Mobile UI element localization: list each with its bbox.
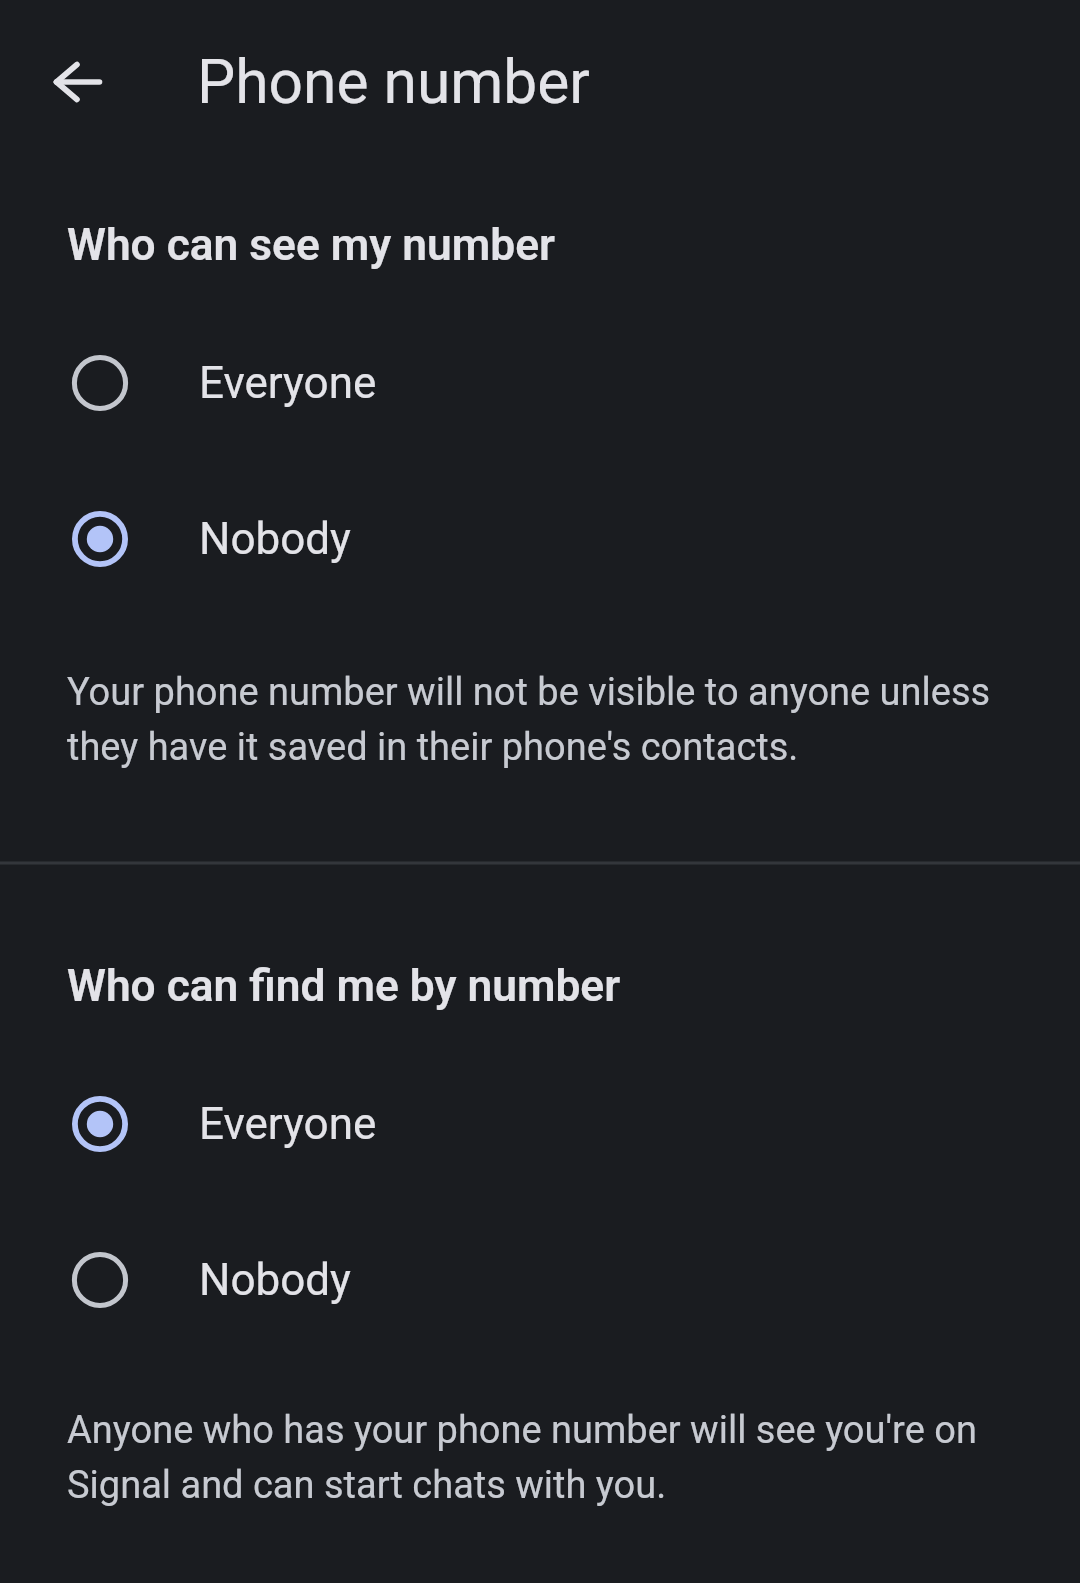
staticText: Everyone xyxy=(199,357,377,409)
staticText: Nobody xyxy=(199,1254,351,1306)
toggle[interactable]: Everyone xyxy=(0,305,1080,461)
staticText: Who can find me by number xyxy=(67,960,621,1012)
staticText: Nobody xyxy=(199,513,351,565)
staticText: Phone number xyxy=(197,47,590,118)
button[interactable]: Navigate up xyxy=(32,36,124,128)
staticText: Anyone who has your phone number will se… xyxy=(67,1399,1013,1509)
staticText: Everyone xyxy=(199,1098,377,1150)
toggle[interactable]: Everyone xyxy=(0,1046,1080,1202)
staticText: Your phone number will not be visible to… xyxy=(67,661,1013,771)
toggle[interactable]: Nobody xyxy=(0,461,1080,617)
toggle[interactable]: Nobody xyxy=(0,1202,1080,1358)
staticText: Who can see my number xyxy=(67,219,555,271)
